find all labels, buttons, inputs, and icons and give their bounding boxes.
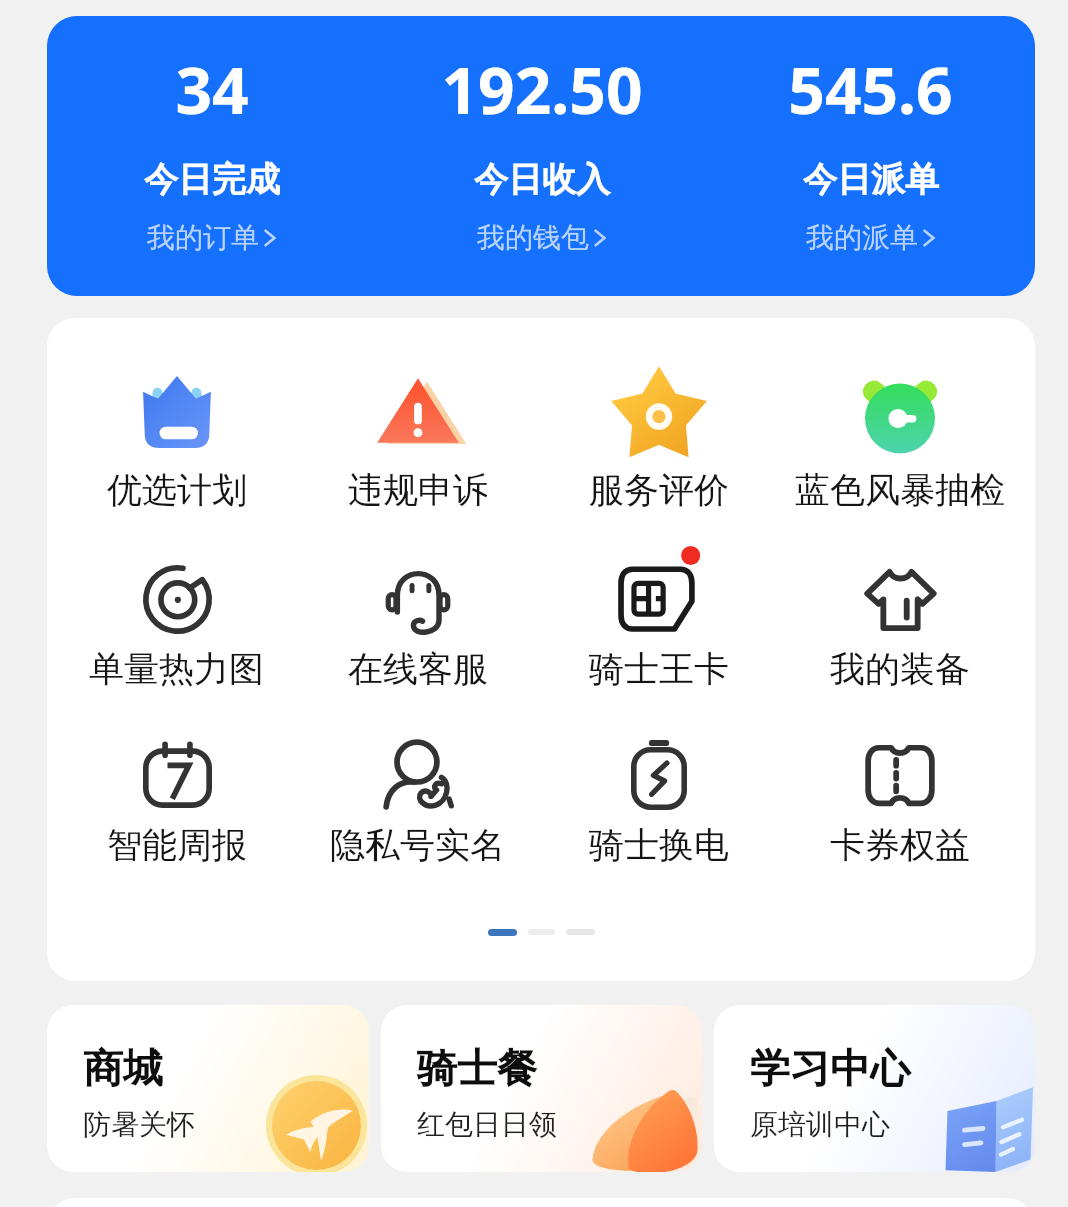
button[interactable]: 单量热力图 [56, 318, 297, 981]
staticText: 红包日日领 [417, 1107, 557, 1142]
button[interactable]: 我的装备 [779, 318, 1020, 981]
staticText: 在线客服 [348, 647, 488, 691]
button[interactable]: 34 [47, 16, 377, 296]
staticText: 我的装备 [830, 647, 970, 691]
staticText: 隐私号实名 [330, 823, 505, 867]
staticText: 原培训中心 [750, 1107, 890, 1142]
staticText: 今日完成 [144, 158, 280, 201]
button[interactable]: 545.6 [706, 16, 1035, 296]
button[interactable]: 违规申诉 [297, 318, 538, 981]
staticText: 骑士换电 [589, 823, 729, 867]
button[interactable]: 骑士换电 [538, 318, 779, 981]
button[interactable]: 192.50 [377, 16, 706, 296]
staticText: 防暑关怀 [83, 1107, 195, 1142]
staticText: 优选计划 [107, 468, 247, 512]
staticText: 违规申诉 [348, 468, 488, 512]
staticText: 智能周报 [107, 823, 247, 867]
staticText: 服务评价 [589, 468, 729, 512]
staticText: 学习中心 [750, 1043, 910, 1093]
staticText: 骑士餐 [417, 1043, 537, 1093]
staticText: 卡券权益 [830, 823, 970, 867]
staticText: 商城 [83, 1043, 163, 1093]
button[interactable]: 骑士王卡 [538, 318, 779, 981]
button[interactable]: 卡券权益 [779, 318, 1020, 981]
staticText: 今日派单 [803, 158, 939, 201]
staticText: 今日收入 [474, 158, 610, 201]
button[interactable]: 学习中心 [714, 1005, 1035, 1172]
button[interactable]: 隐私号实名 [297, 318, 538, 981]
button[interactable]: 优选计划 [56, 318, 297, 981]
button[interactable]: 服务评价 [538, 318, 779, 981]
staticText: 蓝色风暴抽检 [795, 468, 1005, 512]
button[interactable]: 商城 [47, 1005, 369, 1172]
staticText: 192.50 [441, 46, 643, 133]
staticText: 单量热力图 [89, 647, 264, 691]
staticText: 骑士王卡 [589, 647, 729, 691]
button[interactable]: 在线客服 [297, 318, 538, 981]
button[interactable]: 骑士餐 [381, 1005, 702, 1172]
staticText: 我的钱包 [477, 220, 589, 255]
staticText: 545.6 [788, 46, 953, 133]
staticText: 我的派单 [806, 220, 918, 255]
staticText: 34 [175, 46, 249, 133]
button[interactable]: 蓝色风暴抽检 [779, 318, 1020, 981]
staticText: 我的订单 [147, 220, 259, 255]
button[interactable]: 智能周报 [56, 318, 297, 981]
